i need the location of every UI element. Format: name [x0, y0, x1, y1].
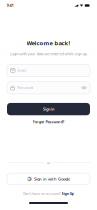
staticText: Email	[18, 68, 27, 73]
staticText: Sign Up	[62, 192, 74, 196]
staticText: Sign in	[43, 106, 54, 112]
staticText: Sign in with Google	[34, 176, 70, 182]
button[interactable]: Sign Up	[62, 192, 74, 196]
staticText: Forgot Password?	[32, 119, 64, 124]
staticText: Login with your data we entered while si…	[9, 51, 87, 56]
button[interactable]: Sign in	[7, 103, 90, 115]
staticText: Password	[17, 86, 33, 90]
staticText: Don't have an account?	[23, 192, 60, 196]
button[interactable]: Password	[7, 82, 90, 94]
staticText: or	[47, 160, 50, 165]
staticText: 9:41	[7, 3, 14, 8]
button[interactable]: Forgot Password?	[26, 117, 70, 126]
staticText: Welcome back!	[26, 39, 70, 47]
button[interactable]: Email	[7, 64, 90, 77]
button[interactable]: Sign in with Google	[7, 173, 90, 185]
